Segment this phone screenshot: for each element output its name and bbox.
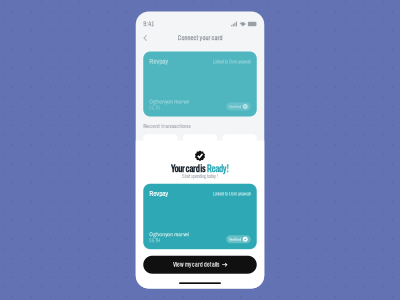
staticText: View my card details: [173, 261, 219, 268]
staticText: 5 ETH: [149, 105, 160, 110]
staticText: Oghonyon marvel: [149, 231, 189, 237]
staticText: Connect your card: [177, 34, 222, 42]
staticText: Recent transactions: [143, 122, 190, 129]
staticText: Linked to Osmanuwah: [213, 191, 251, 197]
staticText: 9:41: [143, 20, 154, 27]
staticText: Ready!: [207, 163, 229, 174]
staticText: Your card is: [171, 163, 207, 174]
staticText: 5 ETH: [149, 238, 160, 243]
staticText: Oghonyon marvel: [149, 98, 189, 105]
staticText: Verified: [229, 104, 241, 109]
button[interactable]: View my card details: [143, 256, 257, 274]
staticText: Verified: [229, 237, 241, 241]
staticText: Revpay: [149, 190, 168, 197]
staticText: Revpay: [149, 57, 168, 65]
staticText: Start spending today !: [182, 173, 218, 179]
staticText: Linked to Osmanuwah: [213, 59, 251, 64]
